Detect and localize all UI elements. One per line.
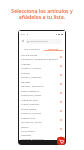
button[interactable]: Jamón <box>19 124 65 133</box>
staticText: Lacteos y Huevos <box>21 111 42 114</box>
staticText: Favoritos <box>48 47 59 50</box>
staticText: Conservas, Salsas <box>21 120 42 123</box>
staticText: Selecciona los artículos y añádelos a tu… <box>0 7 84 20</box>
staticText: Papel higienico <box>21 89 39 92</box>
button[interactable]: Añadir <box>59 135 63 139</box>
button[interactable]: Galletas <box>19 79 65 88</box>
button[interactable]: Añadir <box>59 73 63 77</box>
staticText: Charcuteria <box>21 129 35 132</box>
staticText: Galletas <box>21 80 31 83</box>
staticText: Aceite, Especias <box>21 102 40 105</box>
button[interactable]: Platano <box>19 70 65 79</box>
staticText: Jamón <box>21 125 29 128</box>
button[interactable]: Aceite de oliva <box>19 97 65 106</box>
button[interactable]: Carrito <box>57 137 65 145</box>
staticText: Pan de molde <box>21 53 38 56</box>
staticText: 9:41 <box>21 33 26 36</box>
button[interactable]: Leche entera <box>19 106 65 115</box>
button[interactable]: Cereales <box>19 133 65 140</box>
button[interactable]: Mis productos <box>22 45 42 52</box>
button[interactable]: Pan de molde <box>19 52 65 61</box>
staticText: Droguería, Hogar <box>21 93 42 96</box>
staticText: Frutas y Verduras <box>21 75 42 78</box>
button[interactable]: Añadir <box>59 100 63 104</box>
staticText: Platano <box>21 71 30 74</box>
staticText: Galletas, Desayuno <box>21 84 44 87</box>
staticText: Aceite de oliva <box>21 98 38 101</box>
button[interactable]: Tomate frito <box>19 115 65 124</box>
staticText: Buscar productos <box>30 40 49 43</box>
button[interactable]: Favoritos <box>42 45 65 52</box>
staticText: Yogures <box>21 62 31 65</box>
staticText: Cereales, Desayuno <box>21 137 45 140</box>
button[interactable]: Añadir <box>59 118 63 122</box>
staticText: Tomate frito <box>21 116 36 119</box>
button[interactable]: Añadir <box>59 82 63 86</box>
staticText: Leche entera <box>21 107 37 110</box>
button[interactable]: Añadir <box>59 55 63 59</box>
button[interactable]: Atrás <box>21 39 25 43</box>
staticText: Panaderia, Panaderia y Bolleria <box>21 57 58 60</box>
button[interactable]: Buscar productos <box>26 39 62 44</box>
button[interactable]: Añadir <box>59 127 63 131</box>
staticText: Cereales <box>21 133 32 136</box>
button[interactable]: Añadir <box>59 91 63 95</box>
staticText: Mis productos <box>24 47 40 50</box>
staticText: Lacteos y Huevos <box>21 66 42 69</box>
button[interactable]: Añadir <box>59 64 63 68</box>
button[interactable]: Añadir <box>59 109 63 113</box>
button[interactable]: Yogures <box>19 61 65 70</box>
button[interactable]: Papel higienico <box>19 88 65 97</box>
